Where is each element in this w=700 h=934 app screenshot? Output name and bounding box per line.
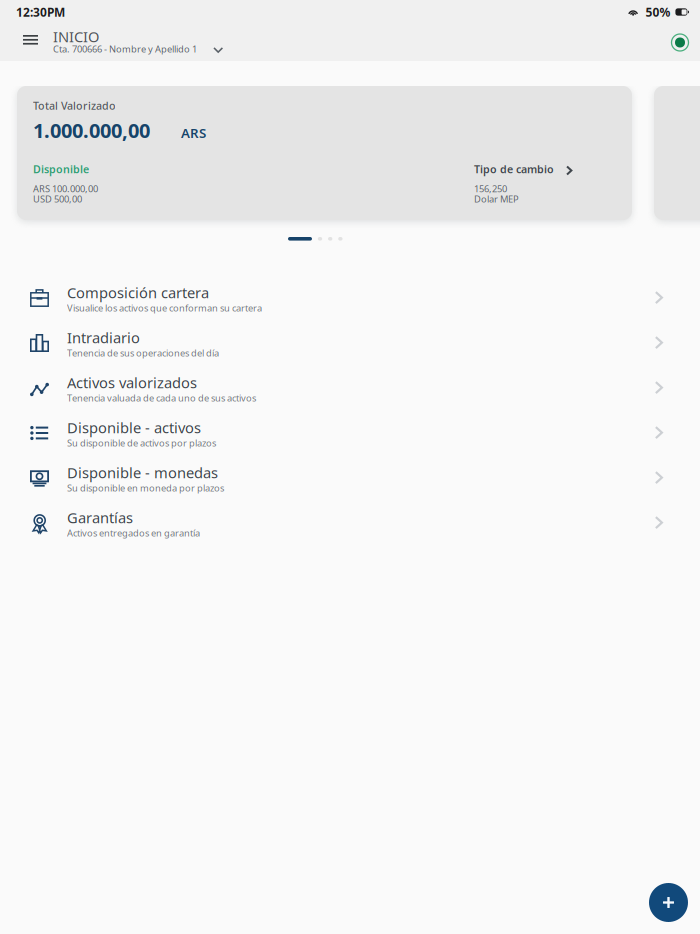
staticText: Su disponible en moneda por plazos [67, 482, 224, 494]
staticText: Su disponible de activos por plazos [67, 437, 216, 449]
staticText: Intradiario [67, 328, 140, 347]
staticText: 50% [645, 4, 670, 20]
staticText: Tenencia de sus operaciones del día [67, 347, 219, 359]
staticText: Tipo de cambio [474, 162, 554, 176]
staticText: Visualice los activos que conforman su c… [67, 302, 262, 314]
button[interactable]: Garantías [0, 507, 700, 552]
button[interactable]: Activos valorizados [0, 372, 700, 417]
staticText: Activos entregados en garantía [67, 527, 200, 539]
staticText: USD 500,00 [33, 193, 82, 205]
staticText: 12:30PM [16, 4, 65, 20]
staticText: ARS 100.000,00 [33, 182, 98, 195]
button[interactable]: Tipo de cambio [474, 163, 619, 174]
staticText: 156,250 [474, 182, 507, 195]
staticText: Disponible - activos [67, 418, 201, 437]
staticText: Tenencia valuada de cada uno de sus acti… [67, 392, 256, 404]
staticText: Disponible [33, 162, 89, 176]
button[interactable]: Estado de conexión [665, 27, 695, 57]
staticText: Disponible - monedas [67, 463, 218, 482]
button[interactable]: Agregar [649, 883, 688, 922]
staticText: Total Valorizado [33, 98, 116, 113]
button[interactable]: Disponible - monedas [0, 462, 700, 507]
staticText: Cta. 700666 - Nombre y Apellido 1 [53, 43, 197, 55]
button[interactable]: Menu [0, 24, 52, 61]
staticText: Activos valorizados [67, 373, 197, 392]
button[interactable]: Intradiario [0, 327, 700, 372]
staticText: Dolar MEP [474, 193, 519, 205]
staticText: ARS [181, 124, 206, 142]
staticText: Composición cartera [67, 283, 209, 302]
staticText: Garantías [67, 508, 133, 527]
button[interactable]: Disponible - activos [0, 417, 700, 462]
staticText: 1.000.000,00 [33, 117, 150, 144]
staticText: INICIO [53, 27, 99, 46]
button[interactable]: Composición cartera [0, 282, 700, 327]
